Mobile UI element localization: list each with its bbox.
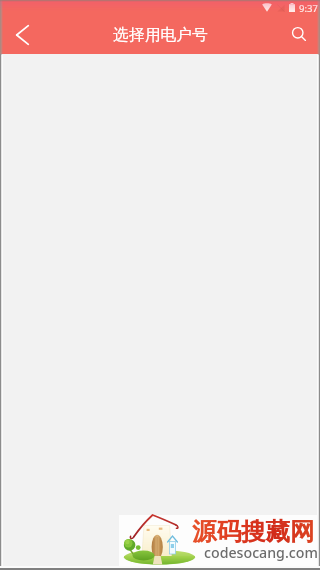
staticText: 源码搜藏网 — [192, 516, 315, 547]
staticText: 9:37 — [299, 2, 318, 15]
staticText: 选择用电户号 — [113, 25, 208, 45]
button[interactable]: Back — [0, 15, 44, 54]
staticText: codesocang.com — [204, 543, 318, 562]
button[interactable]: Search — [280, 15, 320, 54]
